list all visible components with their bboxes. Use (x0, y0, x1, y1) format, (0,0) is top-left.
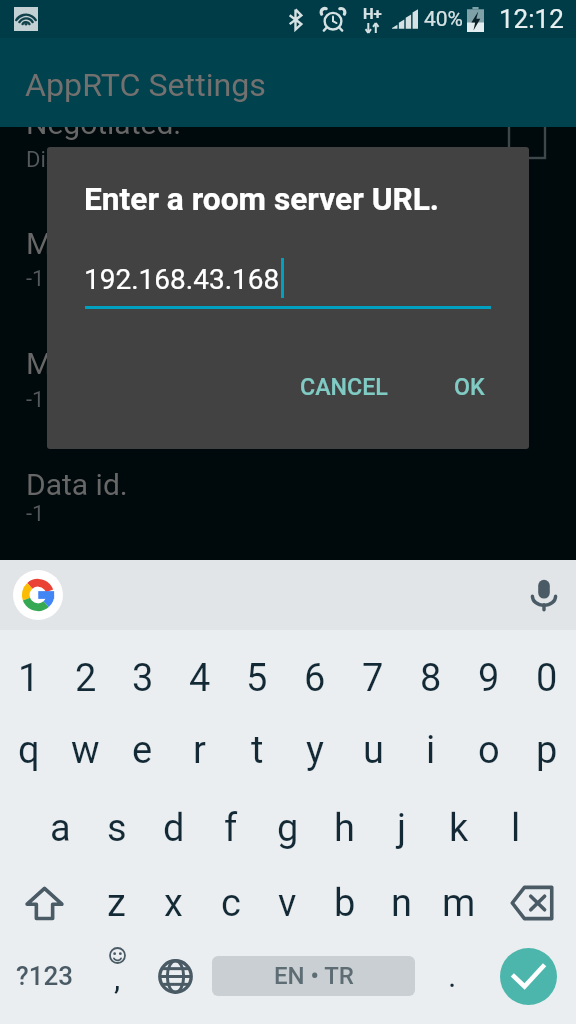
button[interactable]: 0 (518, 640, 576, 716)
staticText: u (363, 728, 384, 773)
staticText: Data id. (26, 467, 128, 502)
staticText: r (193, 728, 206, 773)
staticText: -1 (26, 387, 45, 413)
staticText: 8 (420, 656, 442, 701)
staticText: 40% (424, 7, 463, 32)
staticText: 2 (75, 656, 97, 701)
staticText: y (306, 728, 324, 773)
staticText: i (426, 728, 436, 773)
button[interactable]: 2 (57, 640, 114, 716)
button[interactable]: p (518, 712, 576, 788)
button[interactable]: n (373, 865, 430, 941)
button[interactable]: 8 (402, 640, 460, 716)
button[interactable]: Google search (13, 570, 63, 620)
button[interactable]: d (145, 790, 202, 866)
staticText: o (478, 728, 500, 773)
staticText: x (164, 881, 183, 926)
button[interactable]: y (286, 712, 344, 788)
staticText: c (221, 881, 241, 926)
button[interactable]: k (430, 790, 487, 866)
staticText: w (71, 728, 100, 773)
button[interactable]: v (259, 865, 316, 941)
staticText: s (107, 806, 127, 851)
staticText: 9 (478, 656, 500, 701)
staticText: , (114, 959, 121, 997)
button[interactable]: j (373, 790, 430, 866)
button[interactable]: OK (440, 361, 499, 412)
button[interactable]: Change language (146, 938, 204, 1014)
staticText: 1 (18, 656, 40, 701)
staticText: AppRTC Settings (25, 66, 266, 104)
button[interactable]: m (430, 865, 487, 941)
button[interactable]: u (344, 712, 402, 788)
button[interactable]: h (316, 790, 373, 866)
button[interactable]: 7 (344, 640, 402, 716)
button[interactable]: . (423, 938, 481, 1014)
button[interactable]: Backspace (487, 865, 576, 941)
staticText: z (107, 881, 126, 926)
button[interactable]: q (0, 712, 57, 788)
button[interactable]: Voice input (524, 575, 564, 615)
staticText: q (18, 728, 40, 773)
staticText: 192.168.43.168 (84, 263, 280, 296)
button[interactable]: l (487, 790, 544, 866)
staticText: 4 (189, 656, 211, 701)
button[interactable]: Enter (500, 948, 557, 1005)
button[interactable]: 5 (228, 640, 286, 716)
button[interactable]: c (202, 865, 259, 941)
staticText: l (511, 806, 521, 851)
staticText: n (391, 881, 412, 926)
staticText: CANCEL (300, 373, 388, 400)
staticText: Disabled (26, 147, 111, 173)
staticText: H+ (363, 5, 382, 23)
staticText: 3 (132, 656, 154, 701)
button[interactable]: Emoji, comma (89, 938, 146, 1014)
button[interactable]: w (57, 712, 114, 788)
staticText: k (449, 806, 469, 851)
button[interactable]: g (259, 790, 316, 866)
staticText: j (397, 806, 407, 851)
button[interactable]: i (402, 712, 460, 788)
button[interactable]: e (114, 712, 171, 788)
staticText: h (334, 806, 355, 851)
button[interactable]: 9 (460, 640, 518, 716)
staticText: EN • TR (274, 962, 354, 990)
staticText: . (448, 957, 457, 995)
button[interactable]: 3 (114, 640, 171, 716)
button[interactable]: z (88, 865, 145, 941)
staticText: -1 (26, 501, 45, 527)
staticText: OK (454, 373, 485, 400)
button[interactable]: o (460, 712, 518, 788)
button[interactable]: ?123 (0, 938, 89, 1014)
staticText: Max (26, 226, 84, 261)
staticText: 12:12 (499, 4, 564, 34)
button[interactable]: r (171, 712, 228, 788)
staticText: g (277, 806, 299, 851)
staticText: t (251, 728, 264, 773)
staticText: f (224, 806, 238, 851)
button[interactable]: x (145, 865, 202, 941)
button[interactable]: 6 (286, 640, 344, 716)
button[interactable]: Shift (0, 865, 88, 941)
staticText: m (442, 881, 476, 926)
button[interactable]: a (32, 790, 88, 866)
staticText: ?123 (16, 961, 73, 991)
button[interactable]: 4 (171, 640, 228, 716)
button[interactable]: t (228, 712, 286, 788)
staticText: e (132, 728, 153, 773)
button[interactable]: b (316, 865, 373, 941)
staticText: 5 (246, 656, 268, 701)
button[interactable]: s (88, 790, 145, 866)
staticText: p (536, 728, 558, 773)
staticText: Enter a room server URL. (84, 181, 440, 218)
staticText: 7 (362, 656, 384, 701)
button[interactable]: EN • TR (212, 956, 415, 996)
button[interactable]: 1 (0, 640, 57, 716)
button[interactable]: f (202, 790, 259, 866)
staticText: b (334, 881, 356, 926)
staticText: 6 (304, 656, 326, 701)
staticText: a (50, 806, 71, 851)
staticText: Negotiated. (26, 106, 182, 141)
staticText: -1 (26, 266, 45, 292)
button[interactable]: CANCEL (286, 361, 402, 412)
